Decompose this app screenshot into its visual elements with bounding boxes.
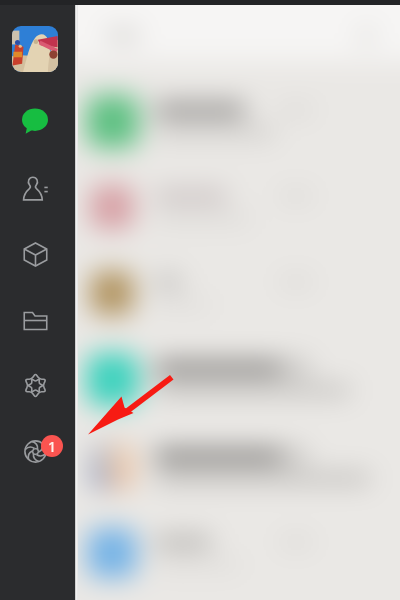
button[interactable] (75, 163, 400, 249)
button[interactable] (75, 509, 400, 595)
button[interactable]: Chats (18, 104, 52, 138)
button[interactable]: Discover (18, 237, 52, 271)
button[interactable] (75, 335, 400, 421)
button[interactable] (75, 249, 400, 335)
button[interactable]: Profile (12, 26, 58, 72)
button[interactable]: Contacts (18, 172, 52, 206)
button[interactable]: Favourites (18, 368, 52, 402)
staticText: 1 (48, 437, 57, 456)
button[interactable]: Files (18, 303, 52, 337)
button[interactable] (75, 77, 400, 163)
button[interactable] (75, 423, 400, 509)
button[interactable]: Moments (18, 434, 52, 468)
